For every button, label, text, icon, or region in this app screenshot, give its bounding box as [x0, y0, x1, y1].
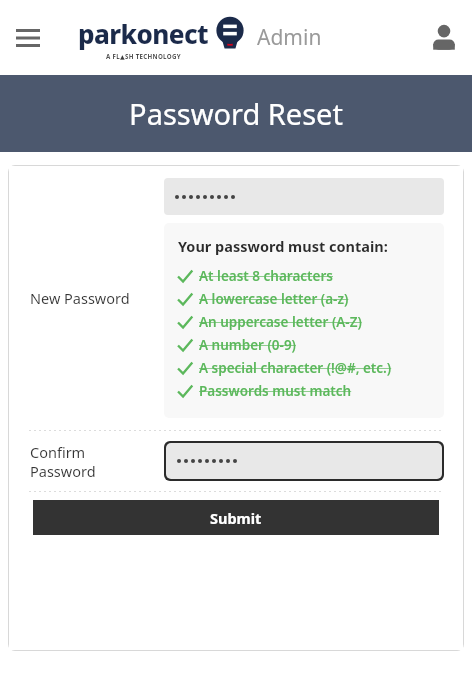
- staticText: parkonect: [78, 16, 209, 51]
- staticText: Your password must contain:: [178, 236, 388, 256]
- staticText: A number (0-9): [199, 336, 296, 354]
- button[interactable]: [166, 443, 442, 479]
- staticText: An uppercase letter (A-Z): [199, 313, 362, 331]
- staticText: Confirm Password: [30, 442, 96, 481]
- staticText: Passwords must match: [199, 382, 352, 400]
- staticText: A lowercase letter (a-z): [199, 290, 349, 308]
- staticText: Submit: [210, 508, 262, 528]
- button[interactable]: Menu: [6, 16, 50, 60]
- staticText: A special character (!@#, etc.): [199, 359, 392, 377]
- staticText: A FL▲SH TECHNOLOGY: [106, 52, 181, 60]
- button[interactable]: [164, 178, 444, 215]
- staticText: Admin: [257, 23, 322, 52]
- staticText: Password Reset: [129, 94, 343, 133]
- button[interactable]: Submit: [33, 500, 439, 535]
- staticText: New Password: [30, 288, 130, 308]
- staticText: At least 8 characters: [199, 267, 334, 285]
- button[interactable]: Account: [420, 14, 468, 62]
